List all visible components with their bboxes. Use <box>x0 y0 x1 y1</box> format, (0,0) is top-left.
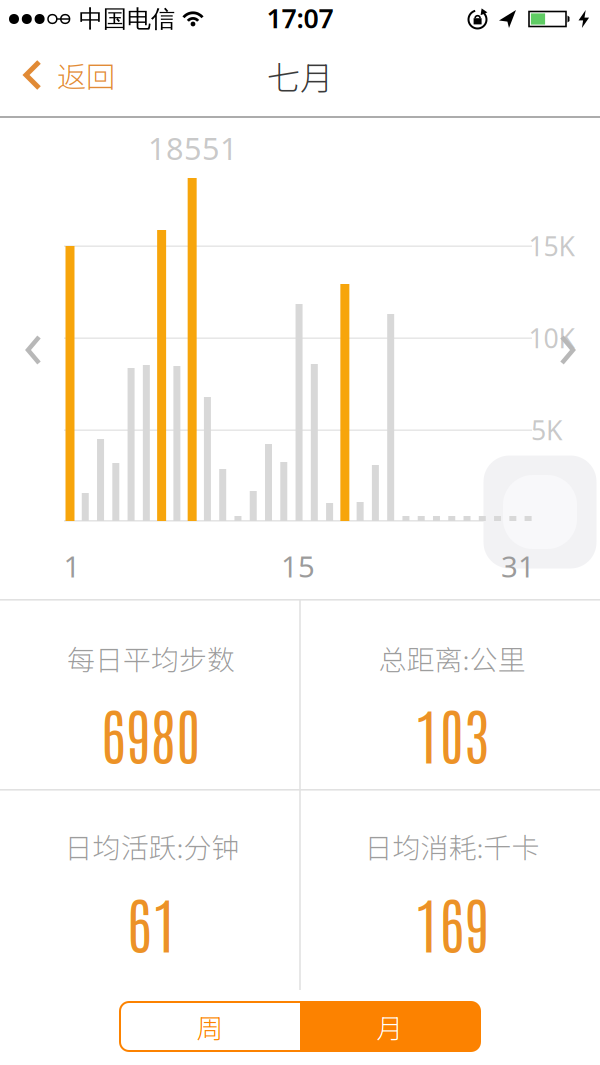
staticText: 七月 <box>267 52 333 100</box>
staticText: 5K <box>531 412 563 448</box>
staticText: 月 <box>376 1007 403 1046</box>
staticText: 103 <box>414 694 489 772</box>
staticText: 日均消耗:千卡 <box>364 826 539 866</box>
staticText: 总距离:公里 <box>378 638 525 678</box>
staticText: 15K <box>528 228 575 264</box>
staticText: 1 <box>63 546 80 585</box>
staticText: 17:07 <box>266 0 333 36</box>
staticText: 15 <box>281 546 315 585</box>
button[interactable]: 月 <box>301 1003 479 1050</box>
staticText: 6980 <box>101 694 201 772</box>
staticText: 周 <box>196 1007 223 1046</box>
button[interactable]: 上个月 <box>25 335 43 365</box>
button[interactable]: 返回 <box>22 59 126 91</box>
staticText: 返回 <box>57 54 115 96</box>
button[interactable]: 周 <box>121 1003 299 1050</box>
button[interactable]: 下个月 <box>558 335 576 365</box>
staticText: 18551 <box>148 128 238 168</box>
staticText: 61 <box>127 883 177 961</box>
staticText: 日均活跃:分钟 <box>64 826 239 866</box>
staticText: 169 <box>414 883 489 961</box>
staticText: 每日平均步数 <box>67 638 235 678</box>
staticText: 中国电信 <box>79 4 175 34</box>
staticText: 31 <box>501 546 535 585</box>
staticText: 10K <box>528 320 575 356</box>
